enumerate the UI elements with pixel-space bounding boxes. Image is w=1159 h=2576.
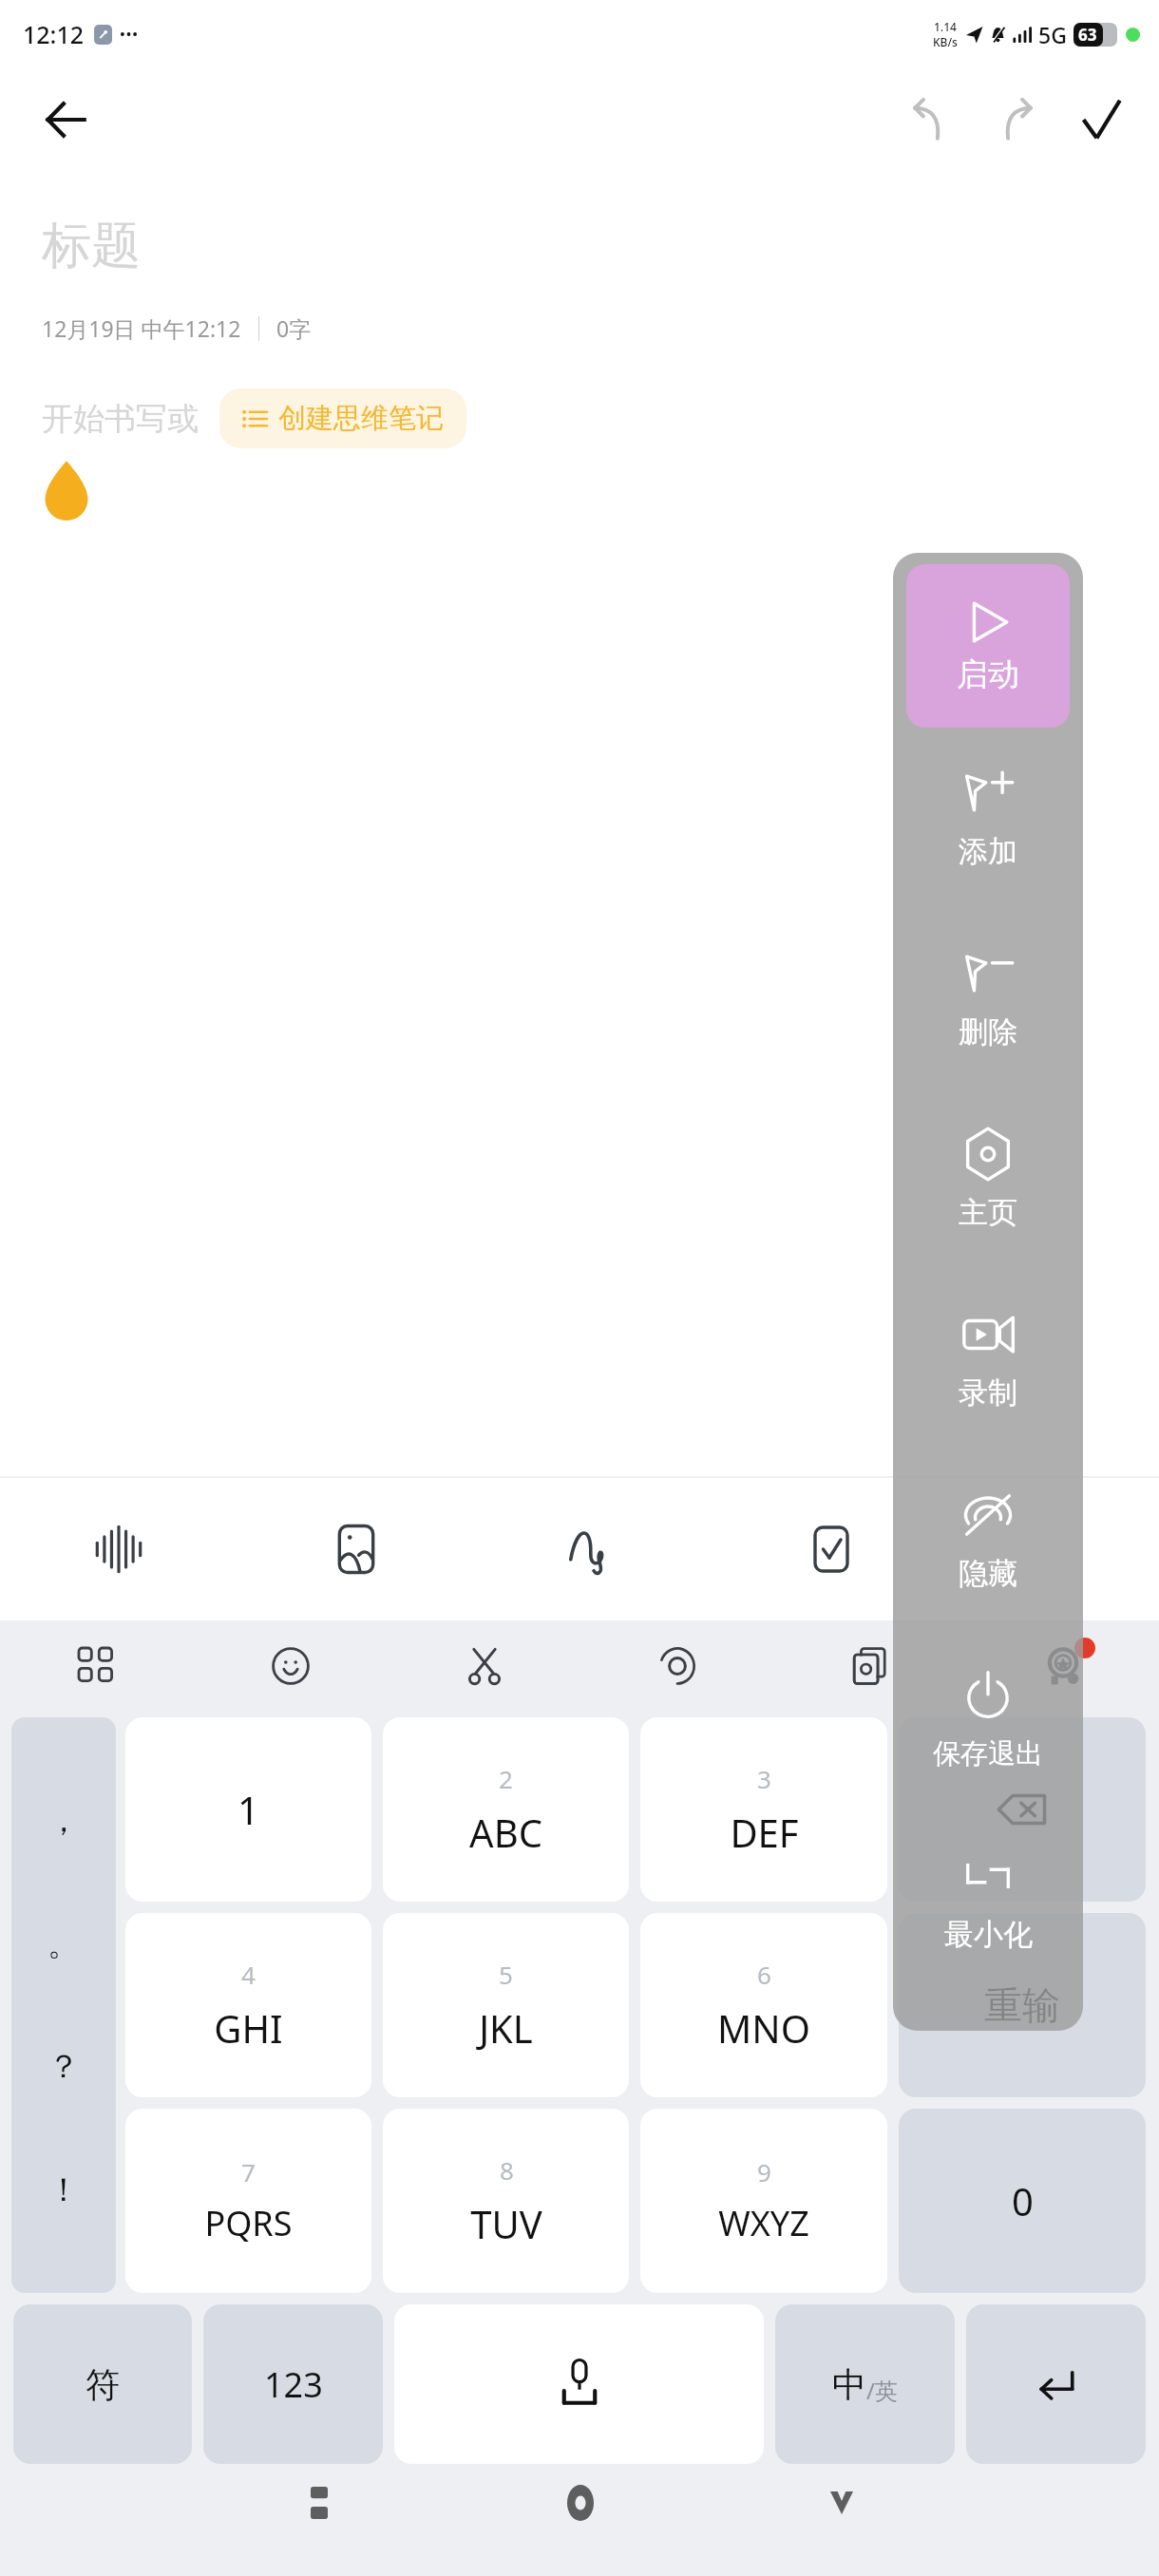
- staticText: 4: [241, 1958, 256, 1991]
- staticText: 标题: [42, 215, 141, 277]
- button[interactable]: Rewards: [966, 1620, 1159, 1712]
- staticText: ，: [47, 1800, 80, 1841]
- staticText: JKL: [479, 2002, 533, 2054]
- button[interactable]: Done: [1066, 85, 1136, 155]
- button[interactable]: Image: [237, 1478, 475, 1620]
- staticText: WXYZ: [718, 2200, 809, 2246]
- button[interactable]: 启动: [906, 564, 1070, 728]
- button[interactable]: Hide keyboard: [711, 2470, 972, 2536]
- staticText: 5: [499, 1958, 513, 1991]
- staticText: 8: [500, 2153, 514, 2187]
- staticText: ？: [47, 2046, 80, 2087]
- staticText: 添加: [959, 833, 1017, 870]
- button[interactable]: Redo: [980, 85, 1051, 155]
- staticText: 1.14: [934, 19, 957, 34]
- button[interactable]: Enter: [966, 2304, 1146, 2464]
- button[interactable]: 最小化: [893, 1810, 1083, 1991]
- staticText: 7: [241, 2155, 256, 2188]
- staticText: 5G: [1038, 20, 1067, 49]
- staticText: 启动: [957, 654, 1019, 694]
- staticText: DEF: [730, 1807, 799, 1858]
- staticText: 创建思维笔记: [278, 401, 444, 436]
- button[interactable]: Back: [32, 86, 99, 153]
- staticText: MNO: [717, 2002, 810, 2054]
- button[interactable]: Translate: [580, 1620, 773, 1712]
- button[interactable]: 5: [383, 1913, 629, 2097]
- button[interactable]: 3: [640, 1717, 887, 1902]
- staticText: 63: [1078, 24, 1097, 46]
- button[interactable]: 符: [13, 2304, 192, 2464]
- button[interactable]: 主页: [893, 1089, 1083, 1269]
- staticText: 0: [1012, 2175, 1034, 2226]
- button[interactable]: 2: [383, 1717, 629, 1902]
- staticText: 主页: [959, 1194, 1017, 1231]
- button[interactable]: 保存退出: [893, 1630, 1083, 1810]
- button[interactable]: 0: [899, 2109, 1146, 2293]
- button[interactable]: 删除: [893, 908, 1083, 1089]
- button[interactable]: Clipboard: [388, 1620, 580, 1712]
- button[interactable]: Apps: [0, 1620, 194, 1712]
- staticText: 12:12: [23, 18, 85, 50]
- staticText: /英: [866, 2375, 898, 2406]
- staticText: PQRS: [204, 2200, 293, 2246]
- staticText: KB/s: [933, 34, 958, 49]
- button[interactable]: 4: [125, 1913, 371, 2097]
- staticText: 6: [757, 1958, 771, 1991]
- button[interactable]: 7: [125, 2109, 371, 2293]
- staticText: 3: [757, 1762, 771, 1795]
- button[interactable]: Todo: [712, 1478, 950, 1620]
- button[interactable]: ，: [11, 1717, 116, 2293]
- staticText: TUV: [470, 2198, 542, 2249]
- staticText: 隐藏: [959, 1555, 1017, 1592]
- staticText: ABC: [469, 1807, 542, 1858]
- button[interactable]: 123: [203, 2304, 383, 2464]
- staticText: 录制: [959, 1374, 1017, 1411]
- button[interactable]: 录制: [893, 1269, 1083, 1449]
- staticText: 。: [47, 1923, 80, 1964]
- button[interactable]: 创建思维笔记: [219, 388, 466, 448]
- button[interactable]: 添加: [893, 728, 1083, 908]
- button[interactable]: Backspace: [899, 1717, 1146, 1902]
- button[interactable]: 8: [383, 2109, 629, 2293]
- staticText: 符: [85, 2363, 120, 2406]
- staticText: 重输: [984, 1981, 1060, 2029]
- button[interactable]: 9: [640, 2109, 887, 2293]
- button[interactable]: Home: [449, 2470, 711, 2536]
- button[interactable]: 1: [125, 1717, 371, 1902]
- staticText: ！: [47, 2169, 80, 2210]
- staticText: 12月19日 中午12:12: [42, 313, 241, 343]
- button[interactable]: Space: [394, 2304, 764, 2464]
- staticText: 删除: [959, 1013, 1017, 1051]
- button[interactable]: 中: [775, 2304, 955, 2464]
- button[interactable]: Draw: [475, 1478, 712, 1620]
- staticText: 最小化: [944, 1916, 1033, 1953]
- button[interactable]: Menu: [188, 2470, 449, 2536]
- staticText: 0字: [276, 313, 312, 343]
- staticText: 中: [832, 2363, 866, 2406]
- button[interactable]: 隐藏: [893, 1449, 1083, 1630]
- staticText: 9: [757, 2155, 771, 2188]
- staticText: 开始书写或: [42, 399, 199, 439]
- staticText: 123: [264, 2361, 323, 2408]
- button[interactable]: 重输: [899, 1913, 1146, 2097]
- button[interactable]: Emoji: [194, 1620, 388, 1712]
- button[interactable]: Doc translate: [773, 1620, 966, 1712]
- staticText: 保存退出: [933, 1736, 1043, 1771]
- button[interactable]: 6: [640, 1913, 887, 2097]
- button[interactable]: Voice: [0, 1478, 237, 1620]
- staticText: GHI: [214, 2002, 283, 2054]
- other: Backspace: [899, 1717, 1146, 1902]
- staticText: 2: [499, 1762, 513, 1795]
- staticText: 1: [237, 1784, 259, 1835]
- button[interactable]: Undo: [895, 85, 965, 155]
